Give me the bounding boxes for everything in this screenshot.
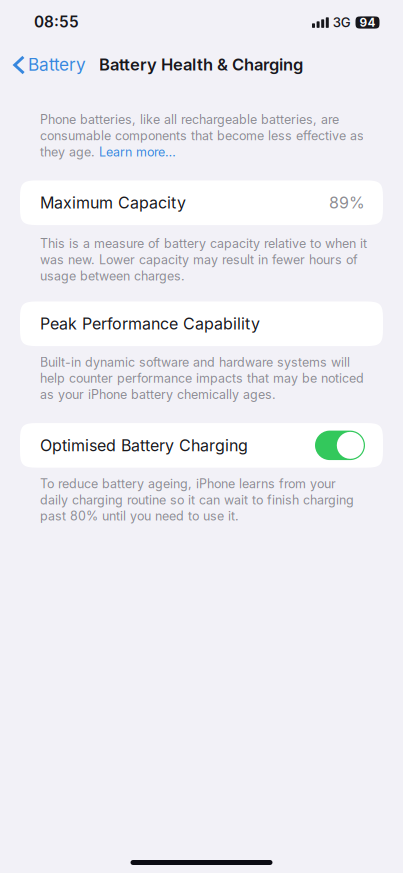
staticText: Phone batteries, like all rechargeable b…: [40, 112, 364, 159]
staticText: This is a measure of battery capacity re…: [40, 236, 367, 283]
staticText: 94: [359, 15, 375, 30]
staticText: To reduce battery ageing, iPhone learns …: [40, 476, 354, 523]
staticText: Peak Performance Capability: [40, 314, 260, 333]
staticText: Built-in dynamic software and hardware s…: [40, 355, 364, 402]
staticText: Optimised Battery Charging: [40, 436, 248, 455]
staticText: 08:55: [34, 13, 79, 31]
staticText: Battery Health & Charging: [99, 54, 303, 74]
staticText: 89%: [329, 193, 365, 212]
staticText: Maximum Capacity: [40, 193, 186, 212]
staticText: 3G: [333, 14, 351, 30]
button[interactable]: Peak Performance Capability: [0, 301, 383, 346]
button[interactable]: Optimised Battery Charging: [315, 431, 365, 460]
staticText: Battery: [28, 54, 86, 75]
button[interactable]: Battery: [0, 45, 97, 83]
